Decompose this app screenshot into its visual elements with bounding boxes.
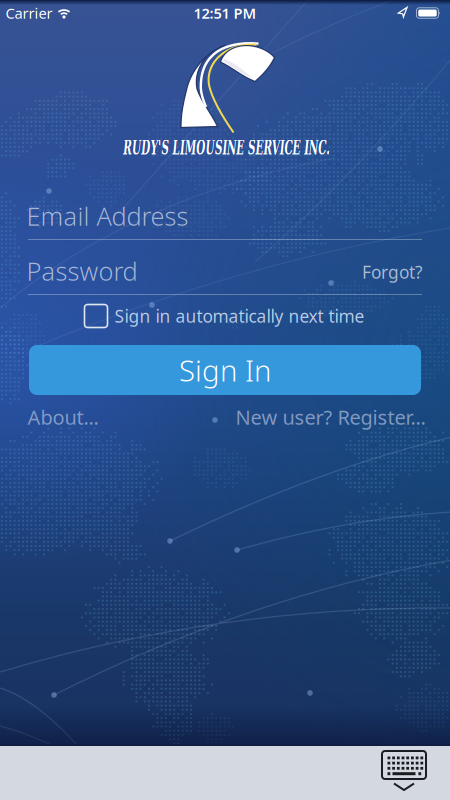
staticText: Forgot? — [362, 260, 423, 283]
button[interactable]: Dismiss Keyboard — [382, 750, 426, 792]
staticText: Email Address — [26, 199, 188, 233]
staticText: Password — [26, 254, 137, 288]
button[interactable]: New user? Register... — [235, 404, 425, 430]
staticText: 12:51 PM — [193, 3, 256, 23]
staticText: Sign In — [179, 350, 271, 389]
button[interactable]: Sign in automatically next time — [84, 304, 364, 327]
button[interactable]: Email Address — [26, 196, 420, 236]
button[interactable]: Sign In — [29, 345, 421, 395]
staticText: Carrier — [5, 3, 52, 23]
staticText: RUDY'S LIMOUSINE SERVICE INC. — [48, 136, 404, 159]
button[interactable]: Password — [26, 251, 326, 291]
staticText: About... — [27, 404, 98, 430]
staticText: Sign in automatically next time — [114, 304, 364, 327]
button[interactable]: About... — [27, 404, 98, 430]
staticText: New user? Register... — [235, 404, 425, 430]
button[interactable]: Forgot? — [362, 260, 423, 283]
